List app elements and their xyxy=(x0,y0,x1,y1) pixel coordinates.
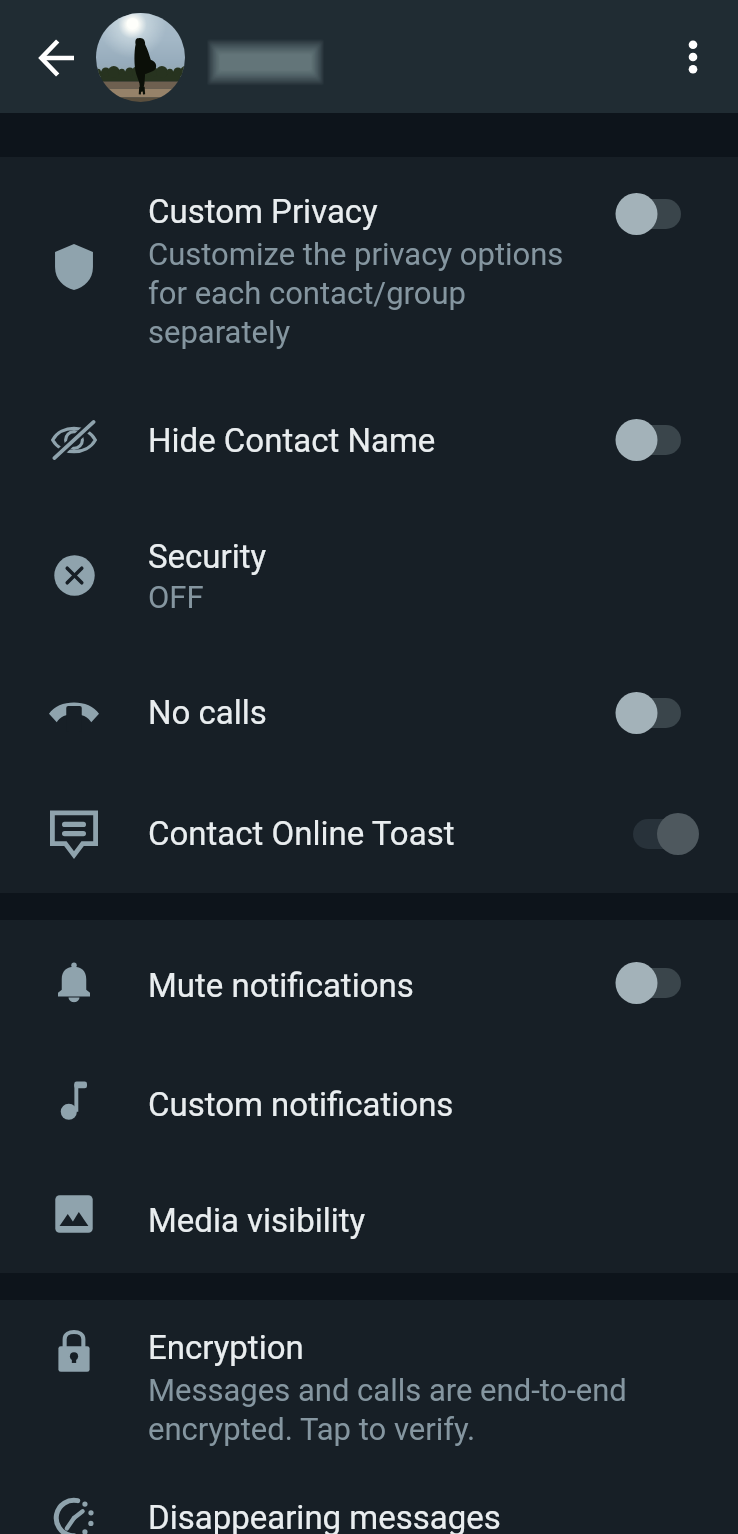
button[interactable]: Security xyxy=(0,500,738,625)
button[interactable]: Mute notifications xyxy=(0,920,738,1042)
button[interactable]: Off xyxy=(613,959,705,1007)
staticText: Customize the privacy options for each c… xyxy=(148,236,578,350)
button[interactable]: Contact Online Toast xyxy=(0,775,738,893)
button[interactable]: Hide Contact Name xyxy=(0,388,738,500)
button[interactable]: On xyxy=(613,810,705,858)
button[interactable]: Off xyxy=(613,416,705,464)
staticText: Mute notifications xyxy=(148,966,414,1005)
staticText: Custom Privacy xyxy=(148,192,378,231)
staticText: Custom notifications xyxy=(148,1085,454,1124)
staticText: Security xyxy=(148,537,267,576)
staticText: OFF xyxy=(148,579,204,615)
button[interactable]: Disappearing messages xyxy=(0,1460,738,1534)
staticText: Disappearing messages xyxy=(148,1498,501,1534)
button[interactable]: No calls xyxy=(0,625,738,775)
button[interactable]: Profile photo xyxy=(96,13,185,102)
staticText: No calls xyxy=(148,693,267,732)
button[interactable]: More options xyxy=(663,27,723,87)
button[interactable]: Custom notifications xyxy=(0,1042,738,1160)
button[interactable]: Off xyxy=(613,190,705,238)
button[interactable]: Media visibility xyxy=(0,1160,738,1273)
staticText: Encryption xyxy=(148,1328,304,1367)
staticText: Hide Contact Name xyxy=(148,421,436,460)
button[interactable]: Encryption xyxy=(0,1300,738,1460)
staticText: Media visibility xyxy=(148,1201,366,1240)
staticText: Messages and calls are end-to-end encryp… xyxy=(148,1372,648,1447)
button[interactable]: Custom Privacy xyxy=(0,157,738,388)
staticText: Contact Online Toast xyxy=(148,814,455,853)
button[interactable]: Off xyxy=(613,689,705,737)
button[interactable]: Back xyxy=(23,24,91,92)
